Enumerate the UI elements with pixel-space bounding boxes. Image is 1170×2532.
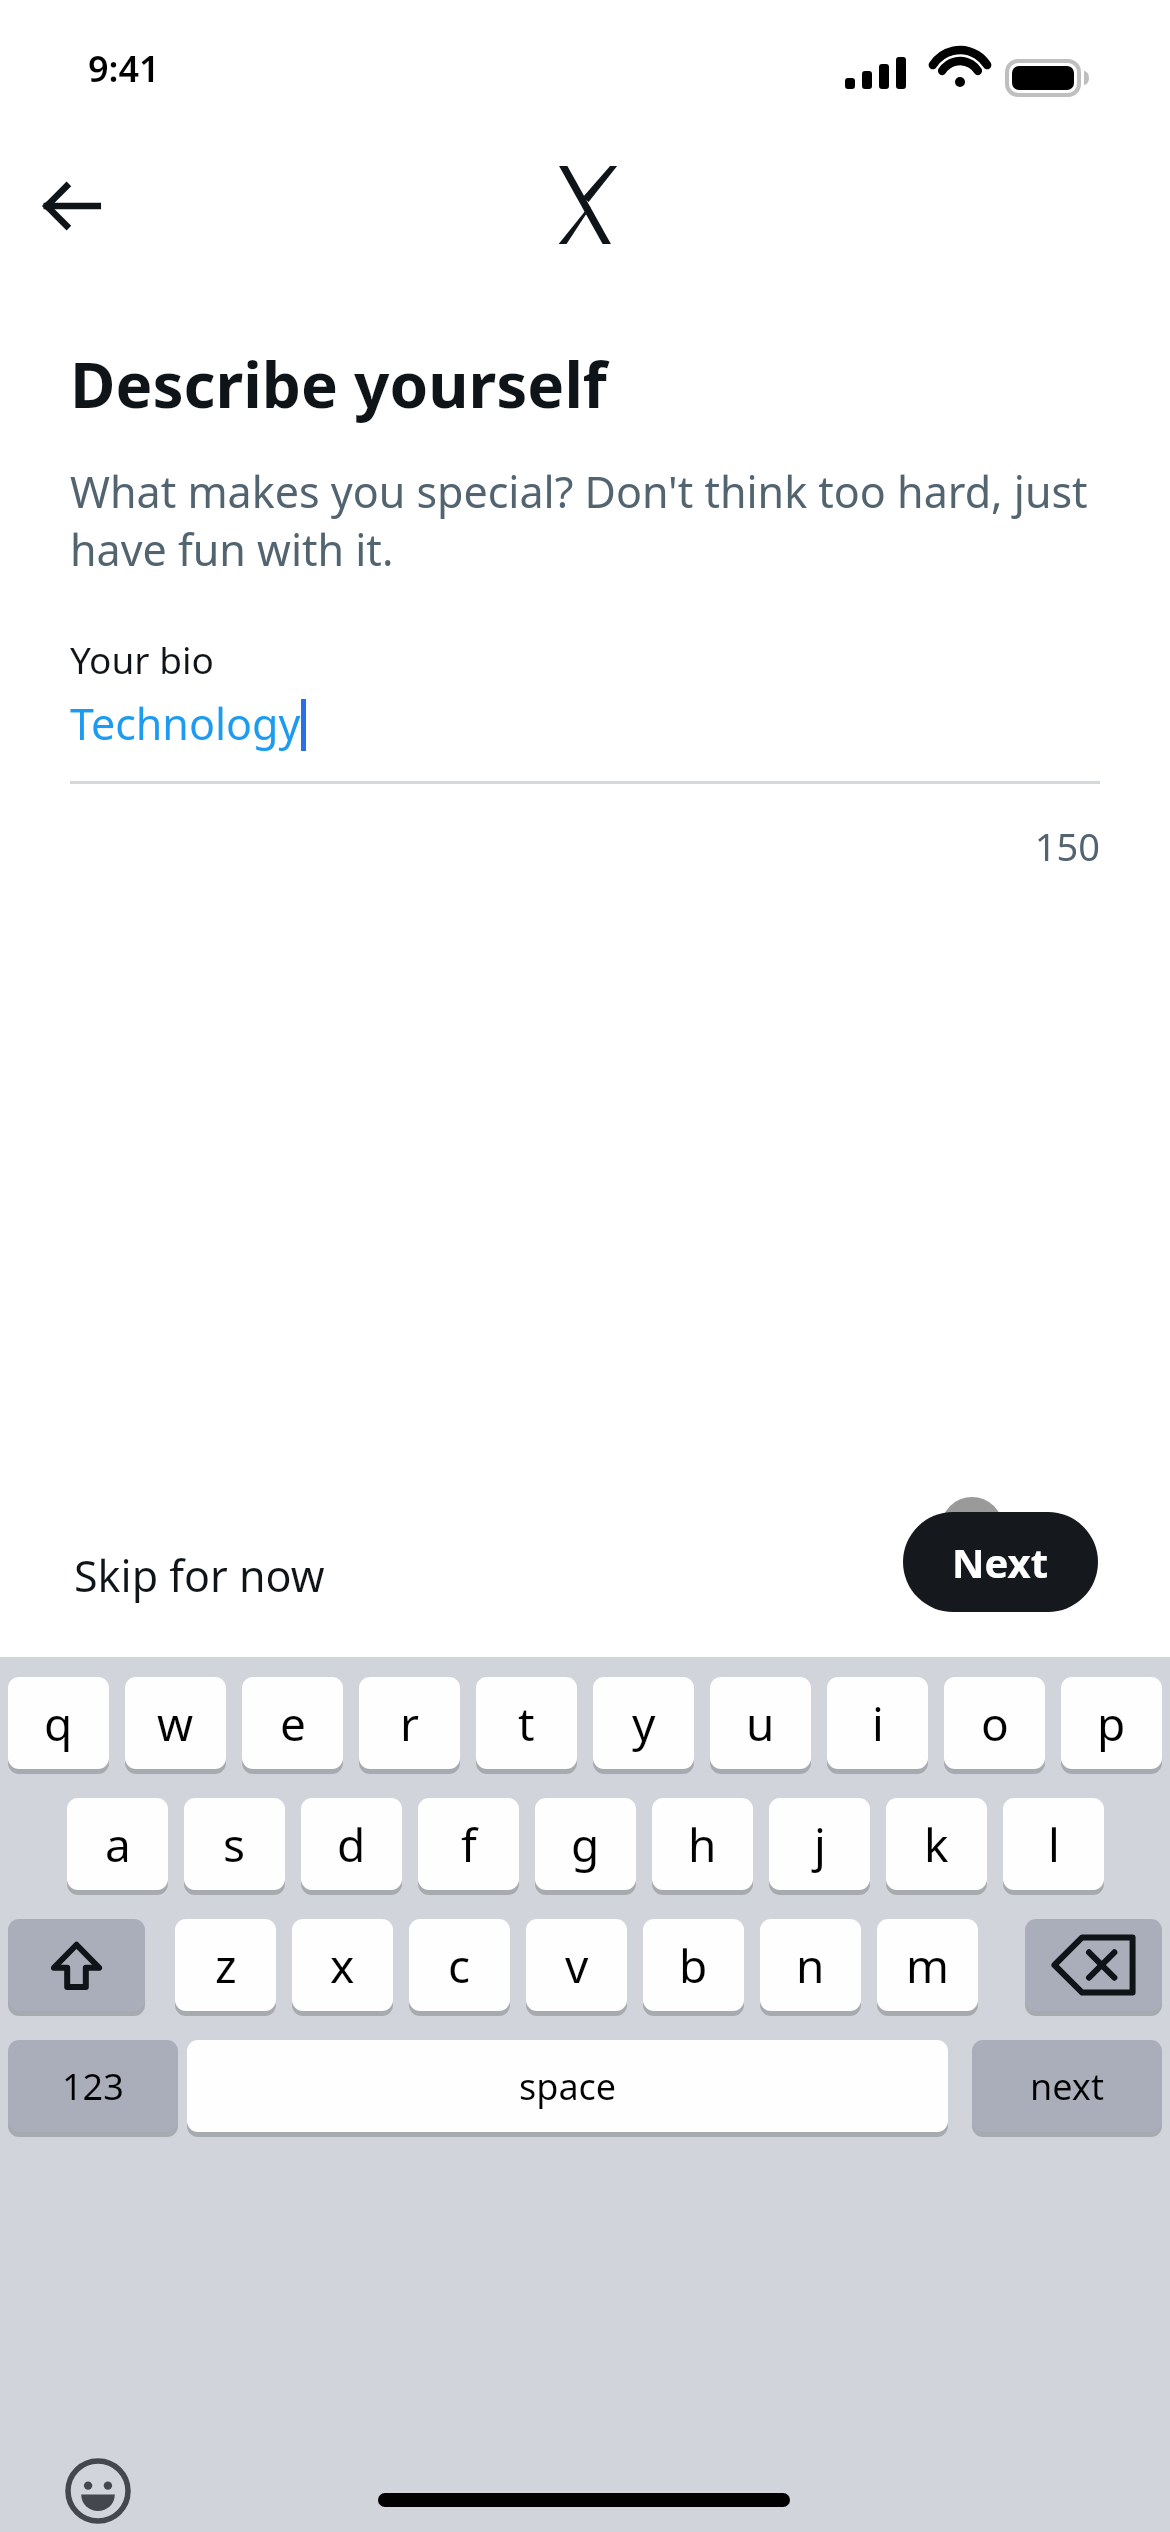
button[interactable]: n bbox=[760, 1919, 861, 2011]
staticText: q bbox=[44, 1692, 73, 1755]
staticText: 123 bbox=[62, 2062, 124, 2111]
staticText: c bbox=[448, 1934, 471, 1997]
staticText: space bbox=[519, 2062, 617, 2111]
button[interactable]: Shift bbox=[8, 1919, 145, 2011]
staticText: e bbox=[280, 1692, 306, 1755]
button[interactable]: k bbox=[886, 1798, 987, 1890]
button[interactable]: 123 bbox=[8, 2040, 178, 2132]
button[interactable]: b bbox=[643, 1919, 744, 2011]
staticText: p bbox=[1097, 1692, 1126, 1755]
staticText: d bbox=[337, 1813, 366, 1876]
staticText: b bbox=[679, 1934, 708, 1997]
staticText: v bbox=[565, 1934, 589, 1997]
button[interactable]: m bbox=[877, 1919, 978, 2011]
button[interactable]: u bbox=[710, 1677, 811, 1769]
staticText: j bbox=[814, 1813, 826, 1876]
staticText: a bbox=[105, 1813, 131, 1876]
button[interactable]: d bbox=[301, 1798, 402, 1890]
button[interactable]: t bbox=[476, 1677, 577, 1769]
staticText: x bbox=[330, 1934, 355, 1997]
staticText: Technology bbox=[70, 694, 301, 753]
staticText: z bbox=[215, 1934, 237, 1997]
button[interactable]: h bbox=[652, 1798, 753, 1890]
staticText: o bbox=[981, 1692, 1009, 1755]
button[interactable]: f bbox=[418, 1798, 519, 1890]
button[interactable]: Your bio bbox=[70, 634, 1100, 784]
button[interactable]: Emoji bbox=[50, 2443, 146, 2532]
button[interactable]: c bbox=[409, 1919, 510, 2011]
staticText: s bbox=[223, 1813, 246, 1876]
staticText: 150 bbox=[70, 820, 1100, 872]
button[interactable]: x bbox=[292, 1919, 393, 2011]
button[interactable]: Backspace bbox=[1025, 1919, 1162, 2011]
staticText: What makes you special? Don't think too … bbox=[70, 462, 1100, 578]
button[interactable]: e bbox=[242, 1677, 343, 1769]
staticText: t bbox=[518, 1692, 535, 1755]
button[interactable]: Back bbox=[24, 158, 120, 254]
button[interactable]: q bbox=[8, 1677, 109, 1769]
staticText: Your bio bbox=[70, 634, 214, 684]
staticText: next bbox=[1030, 2062, 1104, 2111]
button[interactable]: Skip for now bbox=[70, 1538, 329, 1613]
staticText: Describe yourself bbox=[70, 342, 607, 426]
staticText: k bbox=[924, 1813, 949, 1876]
staticText: h bbox=[688, 1813, 717, 1876]
button[interactable]: j bbox=[769, 1798, 870, 1890]
button[interactable]: space bbox=[187, 2040, 948, 2132]
staticText: y bbox=[632, 1692, 656, 1755]
staticText: Skip for now bbox=[74, 1546, 325, 1605]
button[interactable]: a bbox=[67, 1798, 168, 1890]
staticText: Next bbox=[952, 1535, 1049, 1589]
button[interactable]: y bbox=[593, 1677, 694, 1769]
button[interactable]: r bbox=[359, 1677, 460, 1769]
button[interactable]: w bbox=[125, 1677, 226, 1769]
button[interactable]: i bbox=[827, 1677, 928, 1769]
staticText: 9:41 bbox=[88, 44, 160, 93]
button[interactable]: s bbox=[184, 1798, 285, 1890]
staticText: r bbox=[400, 1692, 419, 1755]
button[interactable]: Next bbox=[903, 1512, 1098, 1612]
button[interactable]: next bbox=[972, 2040, 1162, 2132]
staticText: f bbox=[461, 1813, 477, 1876]
staticText: l bbox=[1048, 1813, 1060, 1876]
button[interactable]: p bbox=[1061, 1677, 1162, 1769]
staticText: u bbox=[746, 1692, 775, 1755]
button[interactable]: o bbox=[944, 1677, 1045, 1769]
button[interactable]: g bbox=[535, 1798, 636, 1890]
staticText: i bbox=[872, 1692, 884, 1755]
staticText: n bbox=[796, 1934, 825, 1997]
button[interactable]: v bbox=[526, 1919, 627, 2011]
button[interactable]: l bbox=[1003, 1798, 1104, 1890]
staticText: w bbox=[157, 1692, 194, 1755]
staticText: g bbox=[571, 1813, 600, 1876]
button[interactable]: z bbox=[175, 1919, 276, 2011]
staticText: m bbox=[906, 1934, 950, 1997]
